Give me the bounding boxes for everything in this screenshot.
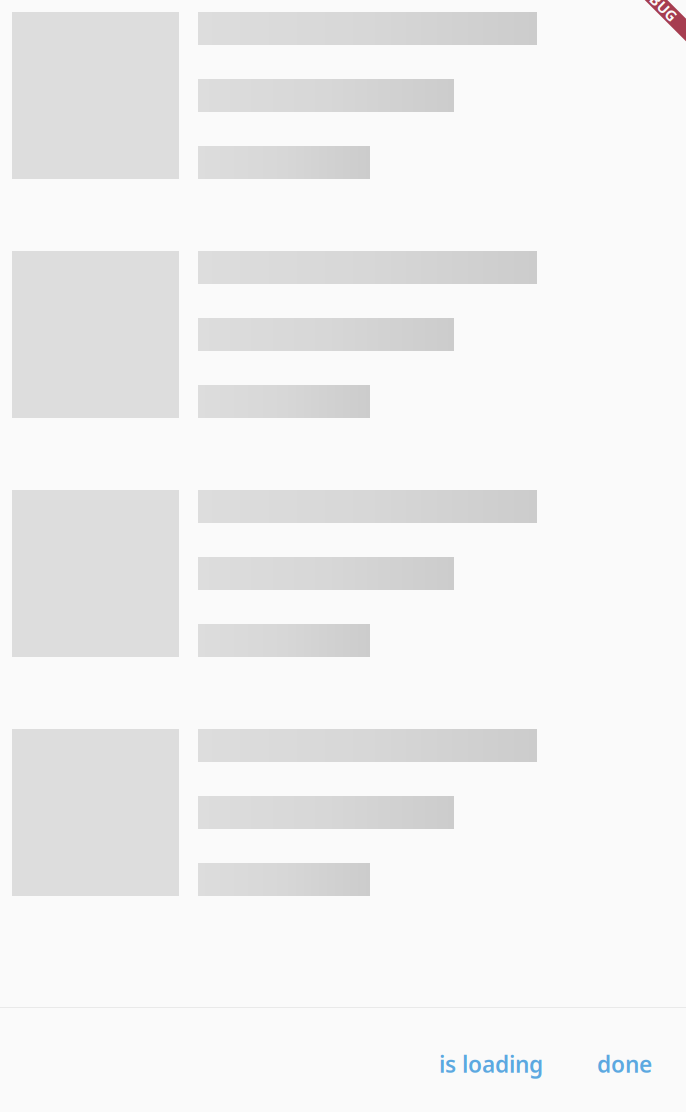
staticText: done — [597, 1049, 652, 1079]
button[interactable]: done — [581, 1041, 668, 1087]
staticText: is loading — [439, 1049, 543, 1079]
staticText: DEBUG — [633, 0, 684, 6]
button[interactable]: is loading — [423, 1041, 559, 1087]
